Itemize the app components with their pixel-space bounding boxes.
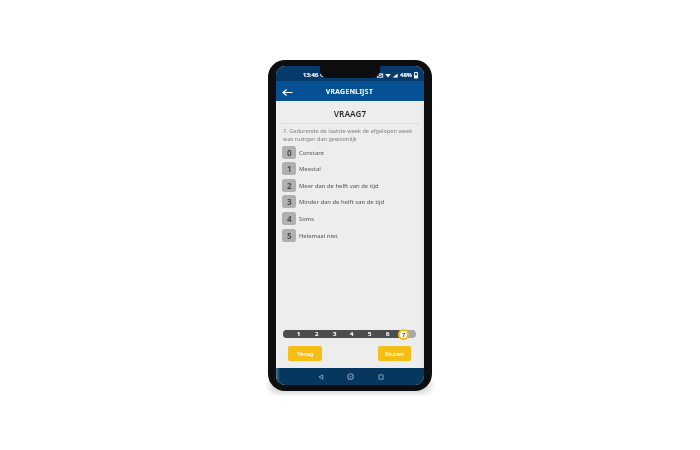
button[interactable]: 7 bbox=[398, 329, 409, 340]
staticText: 6 bbox=[386, 330, 390, 338]
staticText: VRAGENLIJST bbox=[326, 87, 374, 96]
staticText: Soms bbox=[299, 215, 315, 223]
button[interactable]: Home bbox=[344, 370, 357, 383]
staticText: 2 bbox=[287, 180, 292, 191]
staticText: Meestal bbox=[299, 165, 321, 173]
staticText: Terug bbox=[297, 350, 314, 358]
button[interactable]: Sturen bbox=[378, 346, 411, 361]
button[interactable]: Back bbox=[279, 83, 295, 101]
staticText: 2 bbox=[315, 330, 319, 338]
button[interactable]: 2 bbox=[276, 179, 424, 192]
button[interactable]: Back bbox=[314, 370, 327, 383]
button[interactable]: 4 bbox=[276, 212, 424, 225]
staticText: 7. Gedurende de laatste week de afgelope… bbox=[283, 127, 417, 143]
staticText: 0 bbox=[287, 147, 292, 158]
staticText: 4 bbox=[287, 213, 292, 224]
staticText: 4 bbox=[350, 330, 354, 338]
staticText: 48% bbox=[400, 71, 412, 79]
staticText: 13:46 bbox=[303, 71, 319, 79]
button[interactable]: 3 bbox=[276, 195, 424, 208]
staticText: Minder dan de helft van de tijd bbox=[299, 198, 385, 206]
staticText: Meer dan de helft van de tijd bbox=[299, 182, 379, 190]
button[interactable]: 1 bbox=[276, 162, 424, 175]
staticText: Helemaal niet bbox=[299, 232, 338, 240]
staticText: 1 bbox=[287, 163, 292, 174]
staticText: VRAAG7 bbox=[276, 108, 424, 119]
staticText: 5 bbox=[368, 330, 372, 338]
button[interactable]: 5 bbox=[276, 229, 424, 242]
staticText: 7 bbox=[402, 331, 406, 338]
staticText: 3 bbox=[333, 330, 337, 338]
staticText: 3 bbox=[287, 196, 292, 207]
staticText: Sturen bbox=[385, 350, 404, 358]
button[interactable]: Terug bbox=[288, 346, 322, 361]
button[interactable]: Recent apps bbox=[374, 370, 387, 383]
button[interactable]: 0 bbox=[276, 146, 424, 159]
staticText: Constant bbox=[299, 149, 325, 157]
staticText: 1 bbox=[297, 330, 301, 338]
staticText: 5 bbox=[287, 230, 292, 241]
